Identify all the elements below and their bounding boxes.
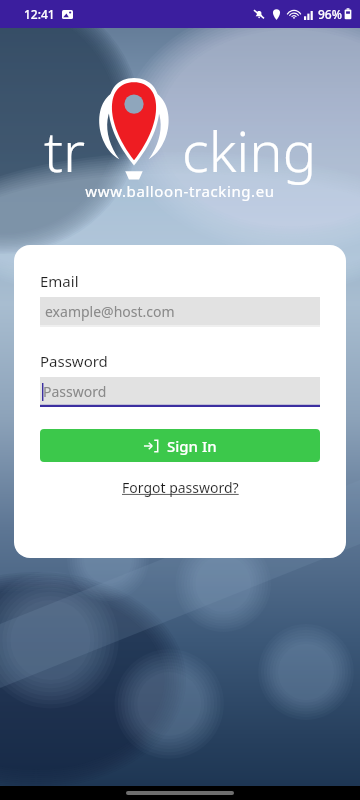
staticText: 12:41	[24, 6, 55, 22]
staticText: Password	[40, 351, 108, 371]
button[interactable]: example@host.com	[40, 297, 320, 327]
staticText: 96%	[318, 6, 342, 22]
button[interactable]: Password	[40, 377, 320, 407]
staticText: www.balloon-tracking.eu	[85, 181, 275, 201]
staticText: cking	[182, 112, 317, 188]
staticText: Email	[40, 271, 79, 291]
staticText: tr	[44, 112, 86, 188]
button[interactable]: Sign In	[40, 429, 320, 462]
staticText: Password	[43, 382, 107, 401]
staticText: example@host.com	[45, 302, 175, 321]
button[interactable]: Forgot password?	[122, 478, 239, 497]
staticText: Sign In	[167, 436, 217, 456]
